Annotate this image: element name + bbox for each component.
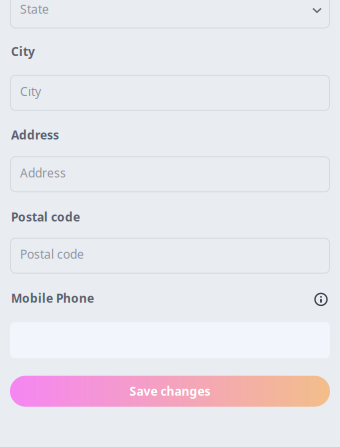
button[interactable]: City [10,75,330,111]
staticText: State [20,1,49,17]
staticText: Postal code [11,209,80,225]
button[interactable]: State [10,0,330,28]
staticText: Save changes [129,383,210,399]
button[interactable]: Save changes [10,376,330,407]
button[interactable]: Postal code [10,238,330,274]
staticText: City [20,83,41,99]
staticText: City [11,43,35,59]
staticText: Address [20,165,66,181]
staticText: Postal code [20,246,84,262]
button[interactable]: Address [10,156,330,192]
staticText: Mobile Phone [11,290,94,306]
button[interactable]: About mobile phone [312,290,330,308]
staticText: Address [11,127,59,143]
